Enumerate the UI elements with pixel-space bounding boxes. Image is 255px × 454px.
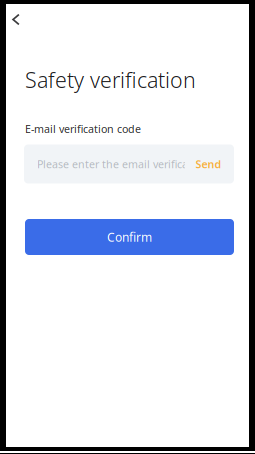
staticText: Confirm [107, 229, 152, 245]
staticText: Send [195, 157, 221, 171]
button[interactable]: Confirm [25, 219, 234, 255]
button[interactable]: Send [195, 157, 221, 171]
staticText: Safety verification [25, 65, 196, 94]
button[interactable]: Back [3, 6, 29, 32]
button[interactable]: Please enter the email verification code [24, 144, 234, 183]
staticText: Please enter the email verification code [37, 157, 235, 171]
staticText: E-mail verification code [25, 122, 141, 136]
